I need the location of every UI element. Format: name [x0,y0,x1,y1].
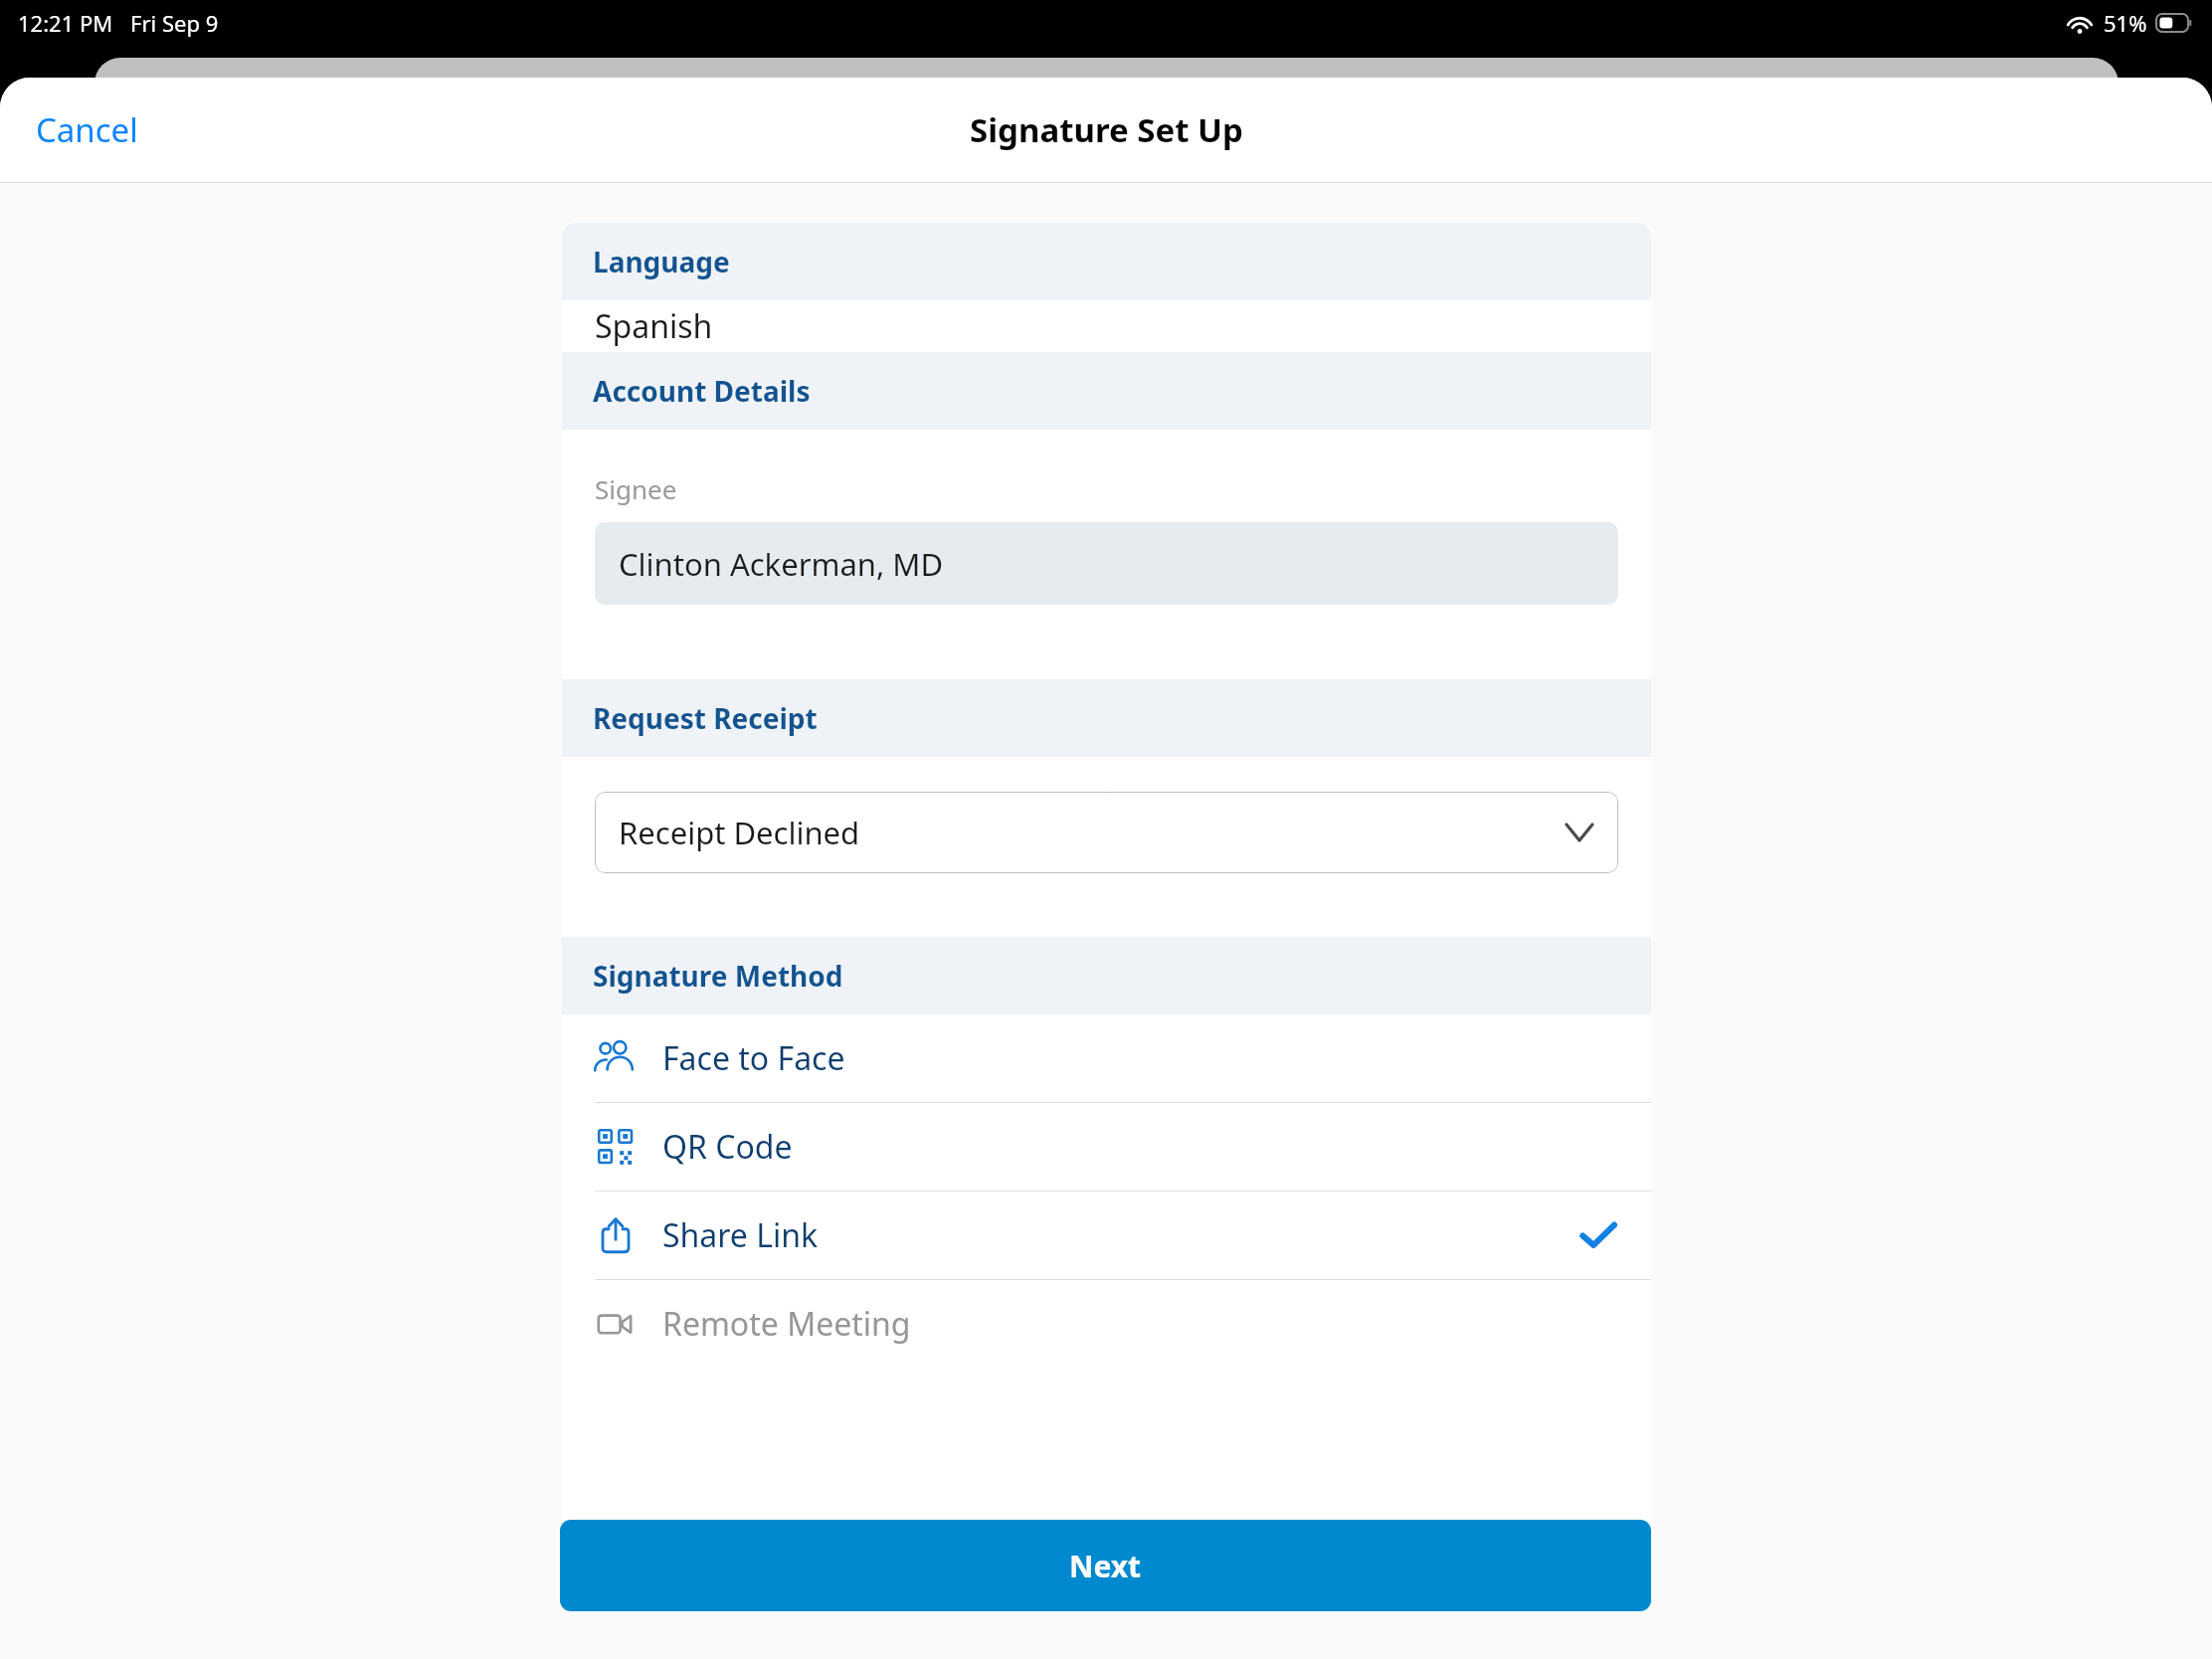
button[interactable]: Remote Meeting [562,1280,1651,1368]
staticText: Receipt Declined [619,812,860,853]
staticText: Account Details [593,372,811,410]
staticText: Share Link [662,1213,819,1257]
button[interactable]: Next [560,1520,1651,1611]
staticText: Fri Sep 9 [130,8,219,38]
staticText: 12:21 PM [18,8,113,38]
staticText: Language [593,243,730,280]
button[interactable]: Spanish [562,300,1651,352]
button[interactable]: Face to Face [562,1014,1651,1102]
button[interactable]: Receipt Declined [595,792,1618,873]
staticText: Clinton Ackerman, MD [619,543,944,585]
staticText: Request Receipt [593,699,818,737]
staticText: Face to Face [662,1036,845,1080]
staticText: Spanish [595,304,713,348]
button[interactable]: Share Link [562,1192,1651,1279]
button[interactable]: Clinton Ackerman, MD [595,522,1618,605]
staticText: Cancel [36,107,138,152]
staticText: Signature Set Up [970,107,1243,152]
staticText: 51% [2104,8,2147,38]
staticText: Next [1069,1546,1142,1586]
staticText: Signee [595,471,677,506]
staticText: Remote Meeting [662,1302,911,1346]
button[interactable]: Cancel [22,97,152,162]
staticText: Signature Method [593,957,843,995]
button[interactable]: QR Code [562,1103,1651,1191]
staticText: QR Code [662,1125,793,1169]
